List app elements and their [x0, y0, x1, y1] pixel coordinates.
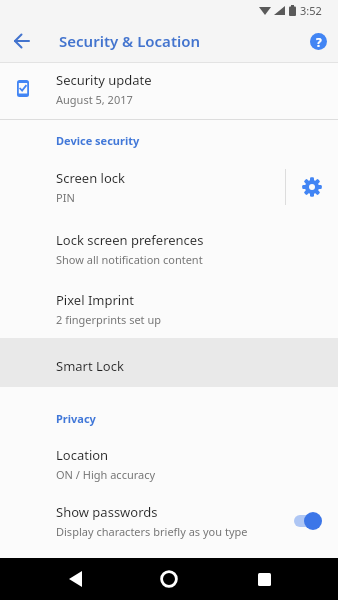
staticText: Privacy: [56, 411, 96, 426]
staticText: Lock screen preferences: [56, 231, 204, 249]
staticText: PIN: [56, 190, 75, 205]
staticText: ON / High accuracy: [56, 467, 156, 482]
staticText: ?: [316, 34, 322, 50]
button[interactable]: ?: [298, 20, 338, 62]
button[interactable]: Security update: [0, 63, 338, 119]
staticText: Display characters briefly as you type: [56, 524, 248, 539]
staticText: 3:52: [300, 3, 322, 18]
button[interactable]: Screen lock: [0, 158, 285, 215]
staticText: 2 fingerprints set up: [56, 312, 161, 327]
button[interactable]: [294, 511, 324, 531]
button[interactable]: Lock screen preferences: [0, 222, 338, 276]
staticText: Show passwords: [56, 503, 158, 521]
staticText: Security update: [56, 71, 152, 89]
button[interactable]: [0, 20, 44, 62]
staticText: August 5, 2017: [56, 92, 133, 107]
staticText: Show all notification content: [56, 252, 203, 267]
button[interactable]: Smart Lock: [0, 338, 338, 387]
staticText: Security & Location: [59, 31, 201, 51]
staticText: Location: [56, 446, 109, 464]
button[interactable]: Location: [0, 438, 338, 490]
staticText: Pixel Imprint: [56, 291, 134, 309]
button[interactable]: [252, 567, 276, 591]
staticText: Screen lock: [56, 169, 125, 187]
button[interactable]: Show passwords: [0, 495, 338, 547]
button[interactable]: [63, 567, 87, 591]
button[interactable]: Pixel Imprint: [0, 282, 338, 335]
staticText: Smart Lock: [56, 357, 124, 375]
button[interactable]: [286, 158, 338, 215]
button[interactable]: [157, 567, 181, 591]
staticText: Device security: [56, 133, 140, 148]
